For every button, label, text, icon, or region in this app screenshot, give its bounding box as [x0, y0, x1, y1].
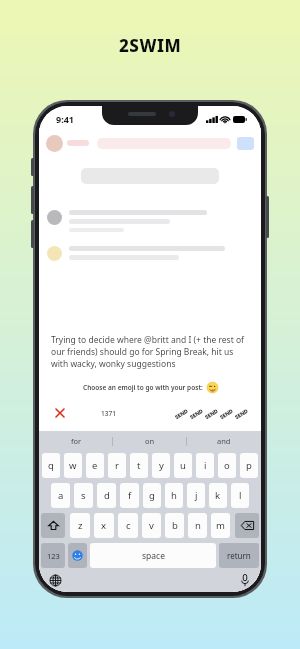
staticText: c	[126, 519, 131, 532]
button[interactable]: SEND	[174, 403, 189, 423]
button[interactable]: t	[130, 453, 148, 478]
staticText: y	[159, 459, 164, 472]
staticText: b	[172, 519, 178, 532]
staticText: k	[215, 489, 221, 502]
button[interactable]: SEND	[204, 403, 219, 423]
button[interactable]: and	[187, 431, 261, 451]
staticText: SEND	[218, 407, 235, 420]
button[interactable]: q	[42, 453, 60, 478]
staticText: 1371	[101, 409, 116, 418]
button[interactable]: SEND	[219, 403, 234, 423]
button[interactable]: y	[152, 453, 170, 478]
staticText: u	[180, 459, 186, 472]
staticText: Choose an emoji to go with your post:	[83, 383, 203, 392]
staticText: e	[92, 459, 98, 472]
staticText: SEND	[188, 407, 205, 420]
staticText: l	[239, 489, 242, 502]
button[interactable]: g	[143, 483, 161, 508]
button[interactable]: b	[165, 513, 184, 538]
button[interactable]: j	[187, 483, 205, 508]
button[interactable]: w	[64, 453, 82, 478]
staticText: t	[137, 459, 141, 472]
button[interactable]: d	[97, 483, 116, 508]
staticText: 123	[47, 551, 60, 561]
staticText: x	[101, 519, 107, 532]
button[interactable]: o	[218, 453, 236, 478]
button[interactable]: r	[108, 453, 126, 478]
staticText: 9:41	[56, 113, 74, 125]
button[interactable]: x	[94, 513, 114, 538]
staticText: j	[195, 489, 198, 502]
staticText: i	[204, 459, 207, 472]
staticText: q	[48, 459, 54, 472]
button[interactable]: return	[219, 543, 259, 568]
button[interactable]: Shift	[41, 513, 65, 538]
button[interactable]: Change keyboard	[47, 572, 63, 588]
button[interactable]: z	[70, 513, 90, 538]
button[interactable]: SEND	[234, 403, 249, 423]
staticText: space	[142, 550, 165, 562]
staticText: g	[149, 489, 155, 502]
button[interactable]: h	[165, 483, 183, 508]
staticText: m	[216, 519, 225, 532]
button[interactable]: f	[120, 483, 139, 508]
staticText: SEND	[203, 407, 220, 420]
button[interactable]: e	[86, 453, 104, 478]
staticText: 2SWIM	[119, 34, 182, 57]
button[interactable]: Close	[51, 404, 69, 422]
staticText: h	[171, 489, 177, 502]
button[interactable]: l	[231, 483, 249, 508]
button[interactable]: SEND	[189, 403, 204, 423]
button[interactable]: for	[39, 431, 113, 451]
staticText: w	[69, 459, 77, 472]
staticText: return	[227, 550, 251, 561]
staticText: p	[246, 459, 252, 472]
button[interactable]: k	[209, 483, 227, 508]
staticText: for	[71, 436, 82, 446]
staticText: SEND	[233, 407, 250, 420]
button[interactable]: i	[196, 453, 214, 478]
staticText: d	[104, 489, 110, 502]
button[interactable]: 123	[41, 543, 65, 568]
staticText: n	[195, 519, 201, 532]
button[interactable]: m	[211, 513, 230, 538]
button[interactable]: s	[74, 483, 93, 508]
button[interactable]: Backspace	[235, 513, 259, 538]
staticText: f	[128, 489, 132, 502]
button[interactable]: Dictate	[237, 572, 253, 588]
staticText: a	[58, 489, 64, 502]
staticText: o	[224, 459, 230, 472]
button[interactable]: Emoji	[68, 543, 87, 568]
button[interactable]: v	[142, 513, 161, 538]
staticText: z	[78, 519, 83, 532]
button[interactable]: space	[90, 543, 216, 568]
staticText: and	[217, 436, 231, 446]
staticText: s	[81, 489, 86, 502]
staticText: on	[145, 436, 155, 446]
button[interactable]: on	[113, 431, 187, 451]
button[interactable]: u	[174, 453, 192, 478]
staticText: Trying to decide where @britt and I (+ t…	[51, 334, 249, 370]
staticText: SEND	[173, 407, 190, 420]
button[interactable]: n	[188, 513, 207, 538]
button[interactable]: p	[240, 453, 258, 478]
staticText: v	[149, 519, 154, 532]
button[interactable]: a	[51, 483, 70, 508]
staticText: r	[115, 459, 119, 472]
button[interactable]: c	[118, 513, 138, 538]
